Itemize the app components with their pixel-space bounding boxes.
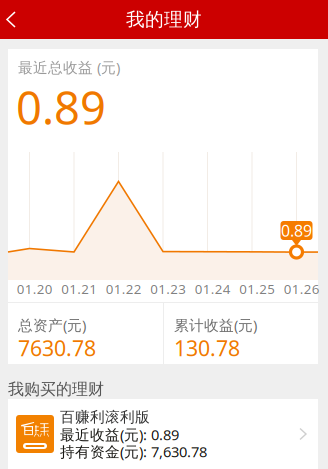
staticText: 01.26 xyxy=(284,280,320,298)
staticText: 01.23 xyxy=(150,280,186,298)
staticText: 0.89 xyxy=(281,220,312,241)
staticText: 百赚利滚利版 xyxy=(60,408,150,426)
staticText: 01.25 xyxy=(239,280,275,298)
staticText: 我的理财 xyxy=(126,8,202,31)
staticText: 01.24 xyxy=(195,280,231,298)
staticText: 我购买的理财 xyxy=(8,379,104,399)
button[interactable]: Back xyxy=(0,0,31,39)
staticText: 最近收益(元): 0.89 xyxy=(60,425,179,444)
staticText: 01.22 xyxy=(106,280,142,298)
staticText: 7630.78 xyxy=(18,334,96,362)
staticText: 0.89 xyxy=(16,77,106,137)
button[interactable]: 百赚利滚利版 xyxy=(8,399,318,469)
staticText: 130.78 xyxy=(174,334,240,362)
staticText: 01.20 xyxy=(17,280,53,298)
staticText: 01.21 xyxy=(61,280,97,298)
staticText: 累计收益(元) xyxy=(174,315,257,335)
staticText: 总资产(元) xyxy=(18,315,86,335)
staticText: 持有资金(元): 7,630.78 xyxy=(60,442,207,461)
staticText: 最近总收益 (元) xyxy=(18,57,120,77)
